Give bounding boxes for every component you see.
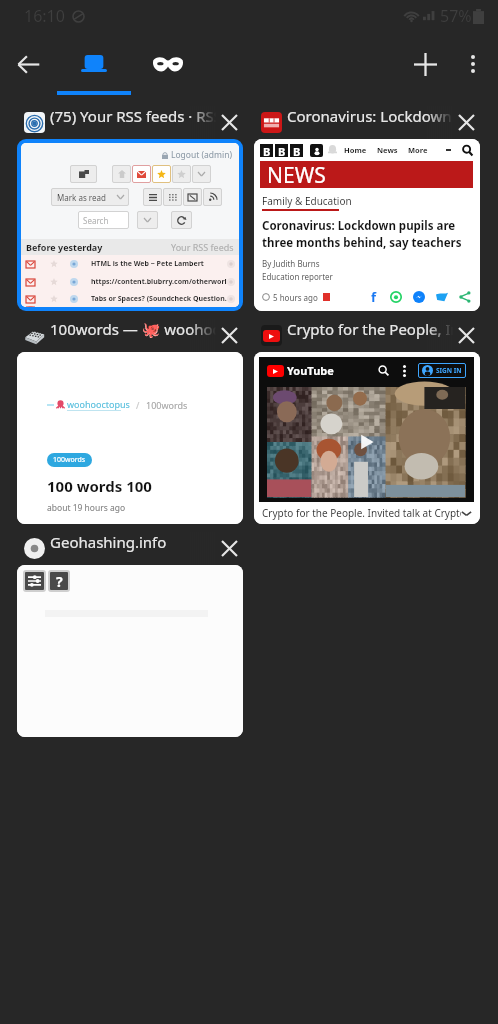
staticText: 5 hours ago: [273, 292, 318, 303]
staticText: 100 words 100: [47, 476, 152, 496]
button[interactable]: Close tab: [216, 535, 243, 562]
staticText: f: [371, 288, 377, 306]
staticText: B: [263, 144, 271, 157]
staticText: three months behind, say teachers: [262, 235, 462, 251]
staticText: Family & Education: [262, 194, 352, 208]
staticText: Your RSS feeds: [171, 241, 234, 253]
staticText: Coronavirus: Lockdown pupils are: [262, 218, 456, 234]
staticText: B: [278, 144, 286, 157]
button[interactable]: Close tab: [453, 322, 480, 349]
button[interactable]: Normal tabs: [57, 32, 131, 95]
button[interactable]: More options: [451, 42, 495, 86]
staticText: 100words: [146, 399, 188, 411]
staticText: More: [408, 145, 428, 155]
button[interactable]: Coronavirus: Lockdown p: [254, 106, 480, 311]
staticText: 100words: [53, 455, 86, 465]
staticText: Tabs or Spaces? (Soundcheck Question...: [91, 294, 227, 304]
button[interactable]: Geohashing.info: [17, 532, 243, 737]
staticText: Coronavirus: Lockdown p: [287, 106, 453, 126]
button[interactable]: Back: [8, 44, 48, 84]
button[interactable]: (75) Your RSS feeds · RSS: [17, 106, 243, 311]
button[interactable]: Private tabs: [131, 32, 205, 95]
staticText: 16:10: [24, 5, 65, 27]
button[interactable]: Close tab: [216, 109, 243, 136]
staticText: Crypto for the People. Invited talk at C…: [262, 506, 461, 520]
staticText: Before yesterday: [26, 241, 103, 253]
staticText: 57%: [440, 5, 472, 27]
button[interactable]: Crypto for the People, Inv: [254, 319, 480, 524]
staticText: /: [136, 399, 140, 411]
staticText: ?: [56, 572, 63, 590]
staticText: News: [377, 145, 398, 155]
staticText: about 19 hours ago: [47, 502, 126, 514]
staticText: Education reporter: [262, 271, 333, 282]
staticText: NEWS: [267, 161, 326, 188]
staticText: Search: [83, 215, 109, 226]
staticText: Home: [344, 145, 367, 155]
staticText: Logout (admin): [171, 149, 232, 161]
staticText: Geohashing.info: [50, 532, 167, 552]
staticText: woohooctopus: [67, 398, 130, 410]
staticText: HTML is the Web ~ Pete Lambert: [91, 259, 227, 269]
staticText: https://content.blubrry.com/otherworl...: [91, 277, 227, 287]
button[interactable]: 100words — 🐙 woohooc: [17, 319, 243, 524]
staticText: 100words — 🐙 woohooc: [50, 319, 216, 339]
staticText: SIGN IN: [436, 366, 462, 375]
staticText: Mark as read: [57, 192, 106, 203]
staticText: B: [293, 144, 301, 157]
button[interactable]: Close tab: [453, 109, 480, 136]
staticText: YouTube: [287, 363, 334, 378]
button[interactable]: Close tab: [216, 322, 243, 349]
button[interactable]: New tab: [403, 42, 447, 86]
staticText: By Judith Burns: [262, 258, 320, 269]
staticText: Crypto for the People, Inv: [287, 319, 453, 339]
staticText: (75) Your RSS feeds · RSS: [50, 106, 216, 126]
